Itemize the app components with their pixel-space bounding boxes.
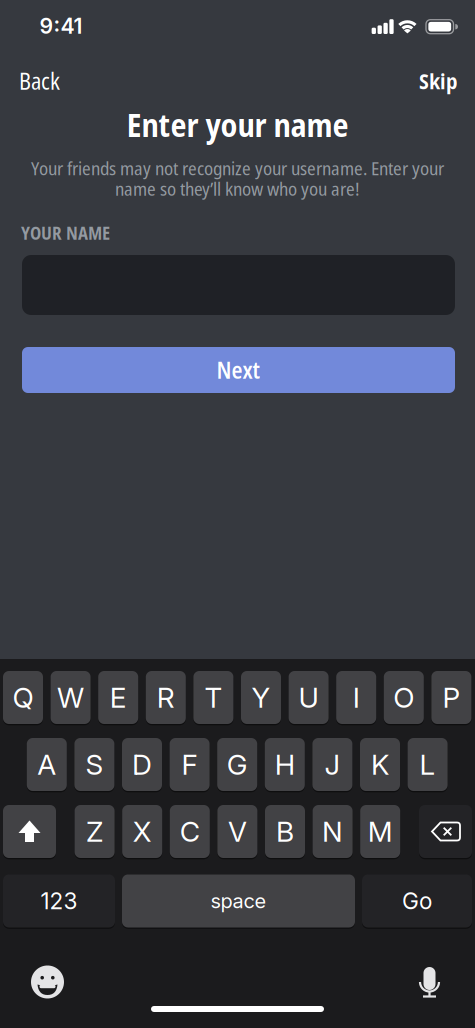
button[interactable]: Shift <box>3 805 56 858</box>
staticText: M <box>368 815 393 848</box>
staticText: K <box>371 748 389 781</box>
button[interactable]: I <box>336 671 376 724</box>
staticText: name so they’ll know who you are! <box>115 176 360 201</box>
staticText: YOUR NAME <box>21 221 110 245</box>
button[interactable]: O <box>384 671 424 724</box>
staticText: Skip <box>419 66 457 96</box>
staticText: Go <box>402 888 432 914</box>
staticText: Y <box>251 681 270 714</box>
button[interactable]: B <box>265 805 305 858</box>
staticText: C <box>180 815 200 848</box>
staticText: space <box>210 889 266 913</box>
button[interactable]: Emoji <box>31 965 64 998</box>
staticText: Back <box>19 66 60 96</box>
button[interactable]: Go <box>362 874 472 927</box>
staticText: E <box>110 681 127 714</box>
button[interactable]: Next <box>22 347 455 393</box>
staticText: P <box>442 681 460 714</box>
button[interactable]: space <box>122 874 355 927</box>
staticText: R <box>157 681 175 714</box>
staticText: Your friends may not recognize your user… <box>31 155 444 181</box>
staticText: X <box>133 815 152 848</box>
button[interactable]: F <box>170 738 210 791</box>
staticText: 123 <box>40 888 77 914</box>
button[interactable]: V <box>217 805 257 858</box>
staticText: A <box>37 748 56 781</box>
button[interactable]: A <box>27 738 67 791</box>
button[interactable]: U <box>289 671 329 724</box>
button[interactable]: N <box>313 805 353 858</box>
staticText: H <box>275 748 295 781</box>
button[interactable]: W <box>51 671 91 724</box>
staticText: L <box>420 748 436 781</box>
button[interactable]: 123 <box>3 874 115 927</box>
button[interactable]: D <box>122 738 162 791</box>
staticText: J <box>324 748 340 781</box>
button[interactable]: P <box>431 671 471 724</box>
staticText: Enter your name <box>126 103 348 146</box>
staticText: V <box>228 815 247 848</box>
button[interactable]: X <box>122 805 162 858</box>
button[interactable]: Delete <box>419 805 472 858</box>
staticText: O <box>393 681 414 714</box>
button[interactable]: J <box>312 738 352 791</box>
button[interactable]: S <box>74 738 114 791</box>
button[interactable]: R <box>146 671 186 724</box>
button[interactable]: G <box>217 738 257 791</box>
button[interactable]: M <box>360 805 400 858</box>
button[interactable]: E <box>98 671 138 724</box>
button[interactable]: Z <box>75 805 115 858</box>
staticText: Q <box>12 681 33 714</box>
staticText: I <box>353 681 360 714</box>
staticText: Z <box>86 815 103 848</box>
staticText: 9:41 <box>39 13 82 39</box>
button[interactable]: L <box>408 738 448 791</box>
staticText: T <box>204 681 222 714</box>
button[interactable]: H <box>265 738 305 791</box>
button[interactable]: K <box>360 738 400 791</box>
button[interactable]: Back <box>19 66 60 96</box>
button[interactable]: Skip <box>419 66 457 96</box>
button[interactable]: Y <box>241 671 281 724</box>
staticText: U <box>299 681 319 714</box>
staticText: F <box>182 748 198 781</box>
staticText: D <box>132 748 152 781</box>
staticText: S <box>85 748 103 781</box>
staticText: B <box>276 815 294 848</box>
button[interactable]: T <box>193 671 233 724</box>
button[interactable]: C <box>170 805 210 858</box>
staticText: G <box>227 748 248 781</box>
staticText: N <box>322 815 343 848</box>
button[interactable]: Dictation <box>412 965 446 999</box>
staticText: W <box>57 681 84 714</box>
staticText: Next <box>216 355 260 385</box>
button[interactable]: Q <box>3 671 43 724</box>
